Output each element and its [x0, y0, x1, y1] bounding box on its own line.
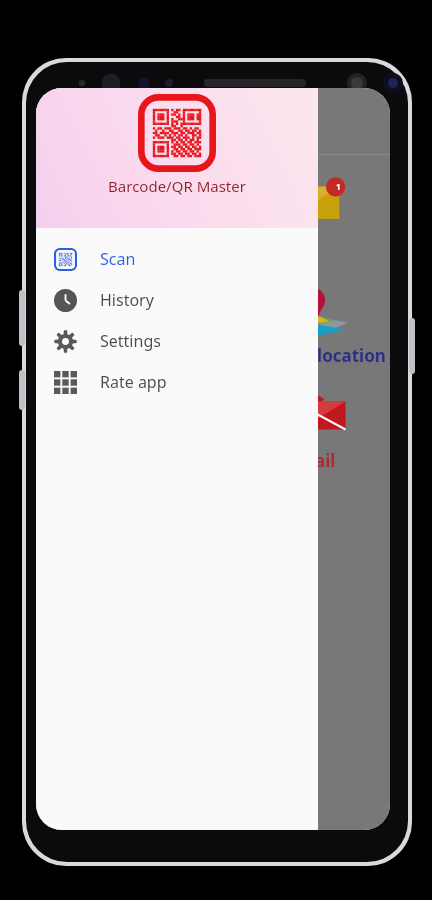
- button[interactable]: E-Mail: [36, 383, 390, 472]
- staticText: Barcode/QR Master: [108, 176, 246, 196]
- button[interactable]: Geolocation: [36, 278, 390, 367]
- staticText: E-Mail: [284, 449, 336, 472]
- button[interactable]: Settings: [36, 320, 318, 361]
- staticText: Settings: [100, 330, 161, 352]
- button[interactable]: Scan: [36, 238, 318, 279]
- staticText: 1: [336, 181, 341, 192]
- button[interactable]: History: [36, 279, 318, 320]
- staticText: Scan: [100, 248, 136, 270]
- staticText: Rate app: [100, 371, 167, 393]
- staticText: Geolocation: [284, 344, 386, 367]
- button[interactable]: 1: [36, 173, 390, 262]
- staticText: SMS: [284, 239, 319, 262]
- staticText: History: [100, 289, 154, 311]
- button[interactable]: Rate app: [36, 361, 318, 402]
